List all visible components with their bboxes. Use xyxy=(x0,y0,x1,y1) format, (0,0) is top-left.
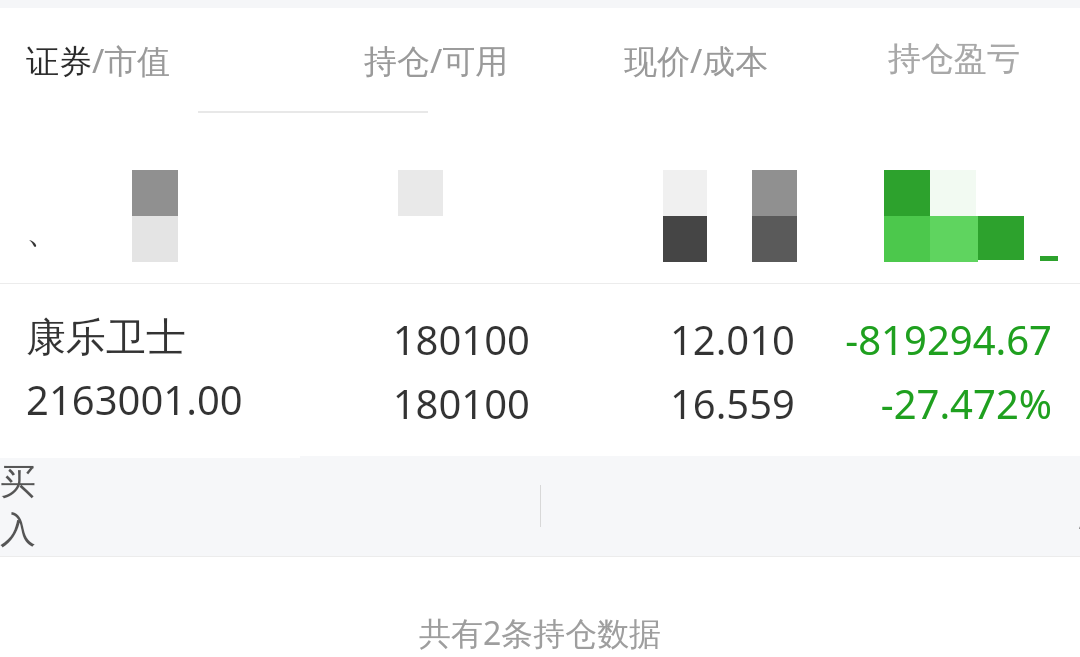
staticText: 180100 xyxy=(392,376,530,430)
staticText: 共有2条持仓数据 xyxy=(419,611,662,655)
staticText: 证券 xyxy=(26,41,92,83)
staticText: -27.472% xyxy=(880,376,1052,430)
button[interactable]: 证券 xyxy=(26,38,171,83)
button[interactable]: 、 xyxy=(0,132,1080,283)
staticText: 、 xyxy=(26,210,60,253)
button[interactable]: 持仓盈亏 xyxy=(888,38,1080,80)
staticText: 现价/成本 xyxy=(624,38,769,83)
button[interactable]: 康乐卫士 xyxy=(0,284,1080,456)
staticText: 180100 xyxy=(392,312,530,366)
staticText: 2163001.00 xyxy=(26,372,243,426)
button[interactable]: 持仓/可用 xyxy=(364,38,509,83)
staticText: 持仓/可用 xyxy=(364,38,509,83)
staticText: 16.559 xyxy=(669,376,795,430)
staticText: 康乐卫士 xyxy=(26,312,186,362)
staticText: -819294.67 xyxy=(845,312,1052,366)
staticText: 持仓盈亏 xyxy=(888,38,1020,80)
staticText: /市值 xyxy=(92,38,171,83)
staticText: 12.010 xyxy=(669,312,795,366)
button[interactable]: 现价/成本 xyxy=(624,38,769,83)
